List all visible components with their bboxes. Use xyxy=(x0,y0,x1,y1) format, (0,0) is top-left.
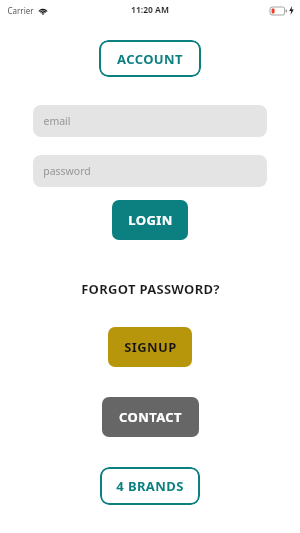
button[interactable]: password xyxy=(33,155,267,187)
other: Account xyxy=(99,40,201,77)
staticText: password xyxy=(43,164,91,178)
staticText: Carrier xyxy=(7,5,34,16)
staticText: CONTACT xyxy=(119,408,182,426)
button[interactable]: LOGIN xyxy=(112,200,188,240)
staticText: 4 BRANDS xyxy=(116,477,184,495)
button[interactable]: 4 BRANDS xyxy=(100,467,200,505)
staticText: FORGOT PASSWORD? xyxy=(81,280,220,298)
staticText: 11:20 AM xyxy=(131,4,169,16)
staticText: ACCOUNT xyxy=(117,50,183,68)
staticText: LOGIN xyxy=(128,211,173,229)
button[interactable]: FORGOT PASSWORD? xyxy=(81,280,220,298)
button[interactable]: CONTACT xyxy=(102,397,199,437)
button[interactable]: SIGNUP xyxy=(108,327,192,367)
staticText: SIGNUP xyxy=(124,338,177,356)
button[interactable]: ACCOUNT xyxy=(99,40,201,77)
button[interactable]: email xyxy=(33,105,267,137)
staticText: email xyxy=(43,114,71,128)
